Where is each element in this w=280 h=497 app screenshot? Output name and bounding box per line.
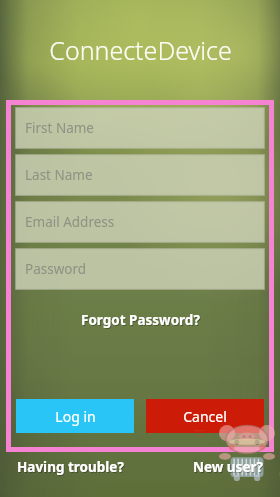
button[interactable]: Having trouble? bbox=[17, 456, 124, 478]
staticText: Email Address bbox=[25, 213, 115, 231]
staticText: Cancel bbox=[183, 407, 227, 426]
button[interactable]: Log in bbox=[16, 399, 134, 433]
button[interactable]: New user? bbox=[193, 456, 263, 478]
staticText: Having trouble? bbox=[17, 458, 124, 476]
staticText: Last Name bbox=[25, 166, 93, 184]
button[interactable]: Cancel bbox=[146, 399, 264, 433]
button[interactable]: Email Address bbox=[16, 202, 264, 242]
button[interactable]: Password bbox=[16, 249, 264, 289]
button[interactable]: First Name bbox=[16, 108, 264, 148]
staticText: New user? bbox=[193, 458, 263, 476]
button[interactable]: Last Name bbox=[16, 155, 264, 195]
staticText: New user? bbox=[194, 459, 264, 477]
staticText: Having trouble? bbox=[18, 459, 125, 477]
staticText: Forgot Password? bbox=[81, 311, 200, 329]
staticText: First Name bbox=[25, 119, 94, 137]
staticText: Log in bbox=[55, 407, 96, 426]
staticText: ConnecteDevice bbox=[49, 33, 232, 67]
staticText: Password bbox=[25, 260, 87, 278]
staticText: Forgot Password? bbox=[82, 312, 201, 330]
button[interactable]: Forgot Password? bbox=[16, 307, 264, 333]
